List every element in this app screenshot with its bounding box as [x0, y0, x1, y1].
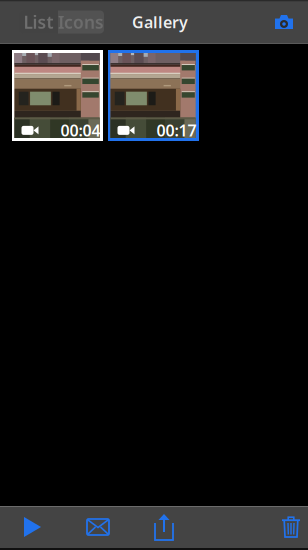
button[interactable]: Export	[131, 506, 197, 548]
button[interactable]: Play	[0, 506, 65, 548]
button[interactable]: Delete	[274, 506, 308, 548]
button[interactable]: 00:04	[12, 50, 103, 141]
staticText: Icons	[58, 10, 104, 33]
staticText: Gallery	[132, 11, 188, 33]
button[interactable]: 00:17	[108, 50, 199, 141]
staticText: 00:17	[156, 120, 196, 141]
button[interactable]: Icons	[58, 10, 104, 33]
button[interactable]: List	[19, 10, 58, 33]
staticText: List	[23, 10, 53, 33]
staticText: 00:04	[60, 120, 100, 141]
button[interactable]: Mail	[65, 506, 131, 548]
button[interactable]: Camera	[267, 0, 308, 44]
